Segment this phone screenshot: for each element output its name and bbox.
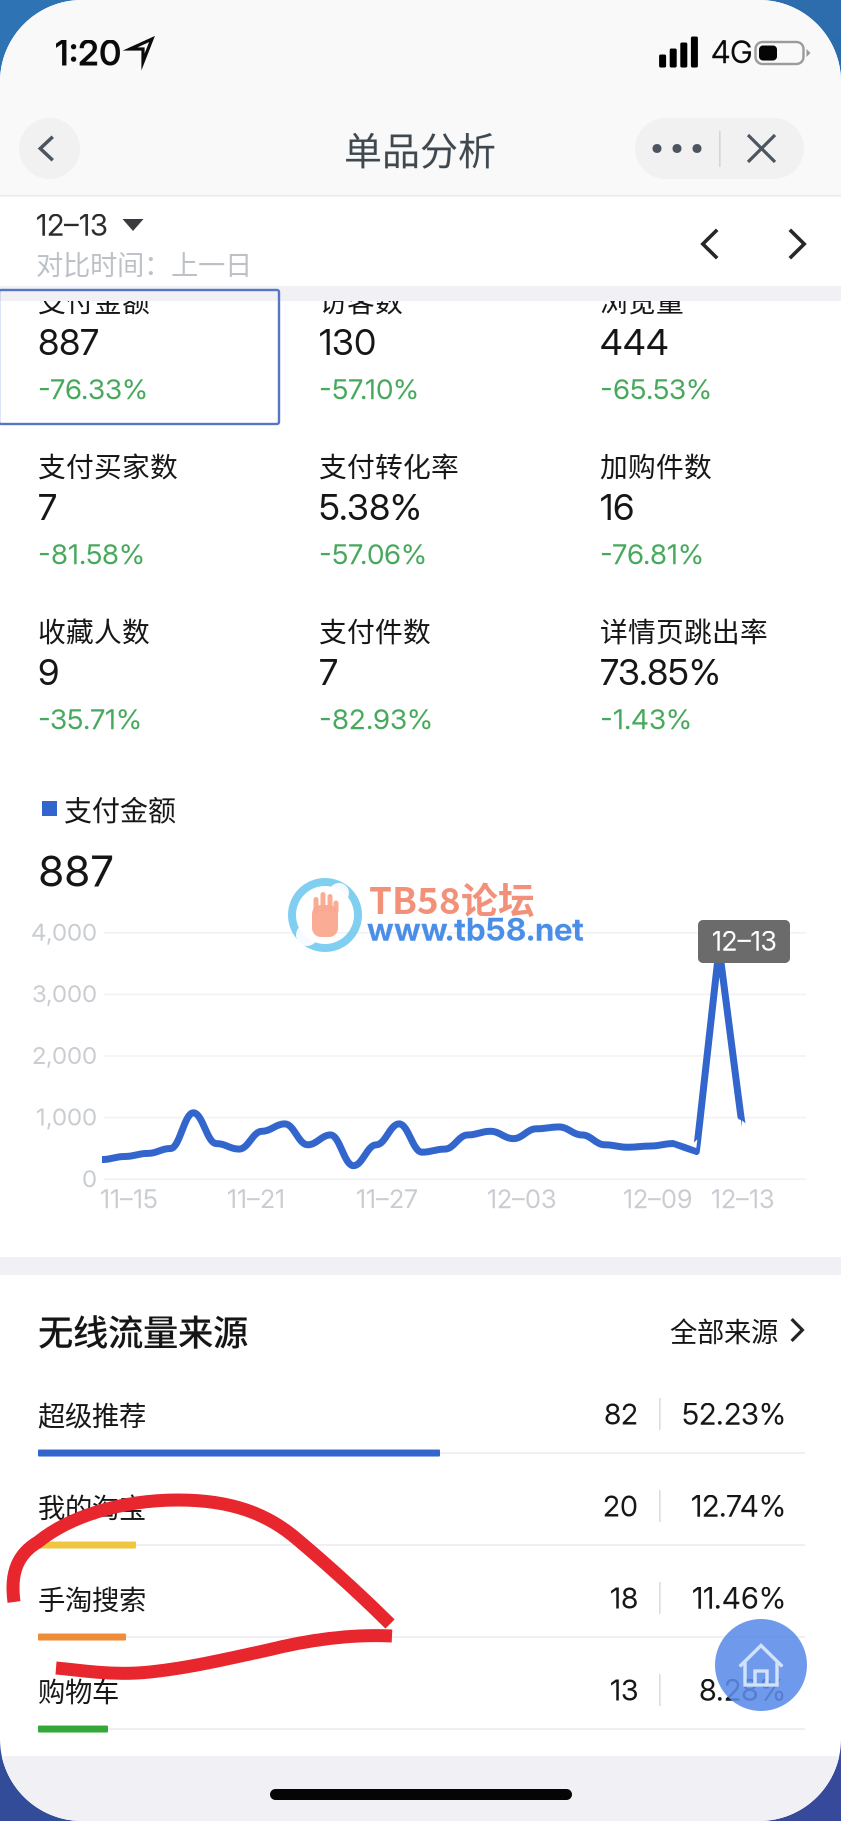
staticText: 1,000 [36, 1102, 97, 1131]
staticText: 4,000 [31, 917, 97, 946]
staticText: -57.06% [319, 537, 427, 571]
staticText: 支付转化率 [319, 445, 459, 485]
button[interactable]: 购物车 [0, 1660, 841, 1751]
staticText: TB58论坛 [369, 871, 535, 925]
staticText: 购物车 [38, 1670, 119, 1710]
staticText: 11–15 [100, 1184, 158, 1214]
staticText: 73.85% [600, 650, 721, 694]
staticText: -81.58% [38, 537, 145, 571]
staticText: 无线流量来源 [38, 1304, 248, 1356]
button[interactable]: 12–13 [36, 206, 326, 292]
staticText: 5.38% [319, 485, 422, 529]
staticText: 12–13 [711, 1184, 775, 1214]
staticText: 9 [38, 650, 59, 694]
staticText: 82 [604, 1397, 638, 1431]
button[interactable]: 返回 [19, 118, 80, 179]
button[interactable]: 关闭 [719, 118, 804, 179]
staticText: 130 [319, 320, 376, 364]
staticText: 20 [603, 1489, 638, 1523]
staticText: 超级推荐 [38, 1394, 146, 1434]
staticText: -82.93% [319, 702, 433, 736]
staticText: 11–21 [227, 1184, 285, 1214]
staticText: 11–27 [356, 1184, 418, 1214]
staticText: 7 [38, 485, 57, 529]
staticText: 访客数 [319, 280, 403, 320]
staticText: 加购件数 [600, 445, 712, 485]
staticText: -35.71% [38, 702, 142, 736]
staticText: 支付买家数 [38, 445, 178, 485]
staticText: 11.46% [692, 1580, 786, 1616]
button[interactable]: 首页 [715, 1619, 807, 1711]
staticText: 3,000 [32, 979, 97, 1008]
staticText: 12.74% [691, 1488, 786, 1524]
staticText: 4G [711, 33, 753, 70]
staticText: 浏览量 [600, 280, 684, 320]
staticText: www.tb58.net [367, 910, 584, 948]
staticText: -65.53% [600, 372, 712, 406]
button[interactable]: 更多 [635, 118, 719, 179]
staticText: 收藏人数 [38, 610, 150, 650]
staticText: 详情页跳出率 [600, 610, 768, 650]
staticText: 12–13 [36, 207, 108, 243]
staticText: 7 [319, 650, 338, 694]
staticText: 52.23% [682, 1396, 786, 1432]
button[interactable]: 后一天 [765, 214, 829, 274]
staticText: 13 [610, 1673, 638, 1707]
staticText: 8.28% [699, 1672, 786, 1708]
staticText: -76.81% [600, 537, 704, 571]
staticText: 12–13 [711, 925, 776, 957]
staticText: 887 [38, 320, 99, 364]
button[interactable]: 手淘搜索 [0, 1568, 841, 1659]
staticText: -57.10% [319, 372, 419, 406]
staticText: 对比时间：上一日 [36, 243, 252, 283]
staticText: 2,000 [32, 1041, 97, 1070]
staticText: 1:20 [55, 32, 121, 74]
staticText: 444 [600, 320, 669, 364]
staticText: 单品分析 [344, 120, 496, 175]
staticText: -76.33% [38, 372, 148, 406]
button[interactable]: 前一天 [678, 214, 742, 274]
staticText: 12–09 [623, 1184, 692, 1214]
button[interactable]: 超级推荐 [0, 1384, 841, 1475]
button[interactable]: 无线流量来源 [0, 1288, 841, 1378]
staticText: 我的淘宝 [38, 1486, 146, 1526]
staticText: 支付件数 [319, 610, 431, 650]
button[interactable]: 我的淘宝 [0, 1476, 841, 1567]
staticText: 全部来源 [670, 1310, 778, 1350]
staticText: 手淘搜索 [38, 1578, 146, 1618]
staticText: 支付金额 [64, 789, 176, 829]
staticText: -1.43% [600, 702, 692, 736]
staticText: 0 [82, 1164, 97, 1193]
staticText: 支付金额 [38, 280, 150, 320]
staticText: 16 [600, 485, 634, 529]
staticText: 12–03 [487, 1184, 557, 1214]
staticText: 887 [38, 845, 114, 897]
staticText: 18 [610, 1581, 638, 1615]
